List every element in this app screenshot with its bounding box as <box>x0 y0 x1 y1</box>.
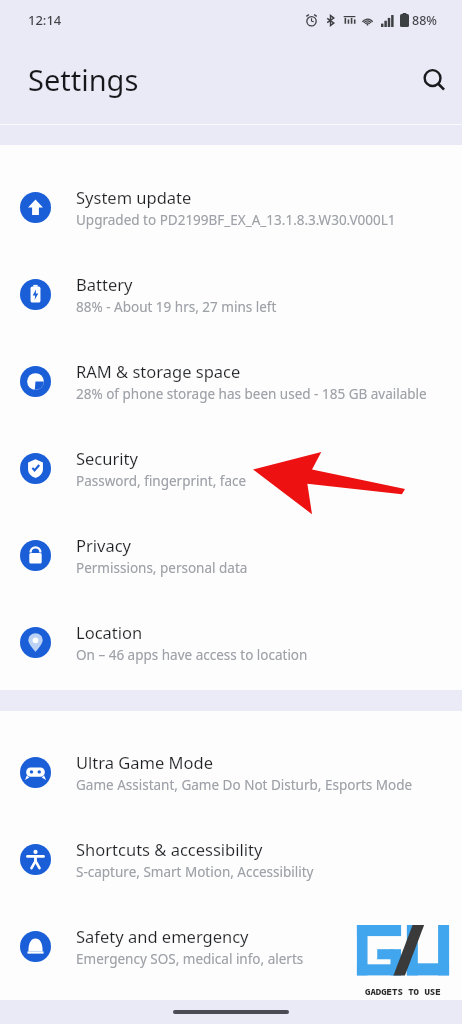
button[interactable]: Ultra Game Mode <box>0 729 462 816</box>
button[interactable]: System update <box>0 164 462 251</box>
staticText: Game Assistant, Game Do Not Disturb, Esp… <box>76 776 413 794</box>
staticText: Ultra Game Mode <box>76 751 213 773</box>
staticText: S-capture, Smart Motion, Accessibility <box>76 863 314 881</box>
staticText: Privacy <box>76 534 132 556</box>
staticText: Safety and emergency <box>76 925 249 947</box>
staticText: GADGETS TO USE <box>365 985 441 997</box>
button[interactable]: RAM & storage space <box>0 338 462 425</box>
button[interactable]: Search <box>410 56 458 104</box>
button[interactable]: Battery <box>0 251 462 338</box>
button[interactable]: Security <box>0 425 462 512</box>
button[interactable]: Shortcuts & accessibility <box>0 816 462 903</box>
staticText: Settings <box>28 60 139 99</box>
staticText: 28% of phone storage has been used - 185… <box>76 385 427 403</box>
staticText: Battery <box>76 273 133 295</box>
button[interactable]: Location <box>0 599 462 686</box>
staticText: 12:14 <box>28 11 62 29</box>
staticText: Emergency SOS, medical info, alerts <box>76 950 304 968</box>
staticText: Permissions, personal data <box>76 559 248 577</box>
button[interactable]: Safety and emergency <box>0 903 462 990</box>
staticText: 88% - About 19 hrs, 27 mins left <box>76 298 277 316</box>
staticText: On – 46 apps have access to location <box>76 646 308 664</box>
staticText: 88% <box>412 12 437 29</box>
staticText: Location <box>76 621 143 643</box>
staticText: Security <box>76 447 138 469</box>
staticText: Upgraded to PD2199BF_EX_A_13.1.8.3.W30.V… <box>76 211 396 229</box>
staticText: Password, fingerprint, face <box>76 472 247 490</box>
staticText: System update <box>76 186 192 208</box>
button[interactable]: Privacy <box>0 512 462 599</box>
staticText: RAM & storage space <box>76 360 241 382</box>
staticText: Shortcuts & accessibility <box>76 838 263 860</box>
